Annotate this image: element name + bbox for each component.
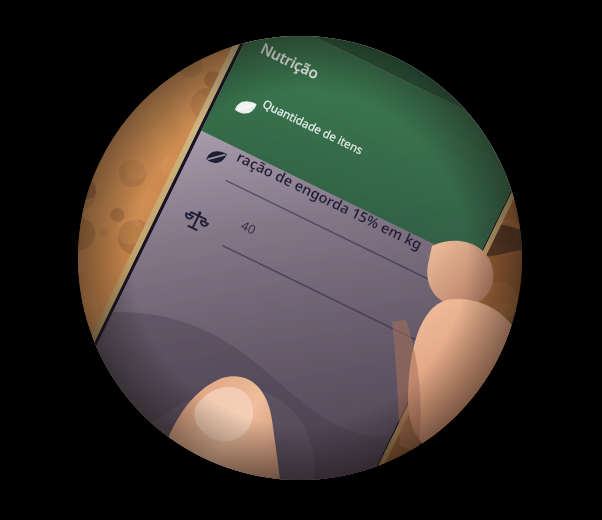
button[interactable]: Photo of a hand holding a phone showing …: [0, 0, 602, 520]
